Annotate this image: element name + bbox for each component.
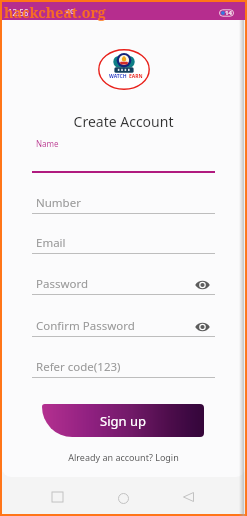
staticText: Sign up <box>100 412 146 430</box>
staticText: Email <box>36 235 66 251</box>
button[interactable]: Recent apps <box>45 485 69 509</box>
staticText: 14 <box>225 9 232 17</box>
staticText: Number <box>36 195 81 211</box>
staticText: Confirm Password <box>36 318 135 334</box>
staticText: 12:56 <box>8 7 29 18</box>
button[interactable]: Sign up <box>42 404 204 437</box>
button[interactable]: Toggle password visibility <box>192 317 212 337</box>
staticText: Refer code(123) <box>36 359 121 375</box>
button[interactable]: Toggle password visibility <box>192 275 212 295</box>
staticText: WATCH <box>109 73 127 80</box>
staticText: hackcheat.org <box>4 3 106 21</box>
button[interactable]: Already an account? Login <box>2 451 245 465</box>
staticText: EARN <box>129 73 143 80</box>
staticText: Already an account? Login <box>2 451 245 463</box>
staticText: Password <box>36 276 89 292</box>
staticText: 4G <box>66 7 76 17</box>
button[interactable]: Home <box>111 486 135 510</box>
staticText: Create Account <box>2 112 245 131</box>
button[interactable]: Back <box>176 485 200 509</box>
staticText: Name <box>36 138 59 149</box>
